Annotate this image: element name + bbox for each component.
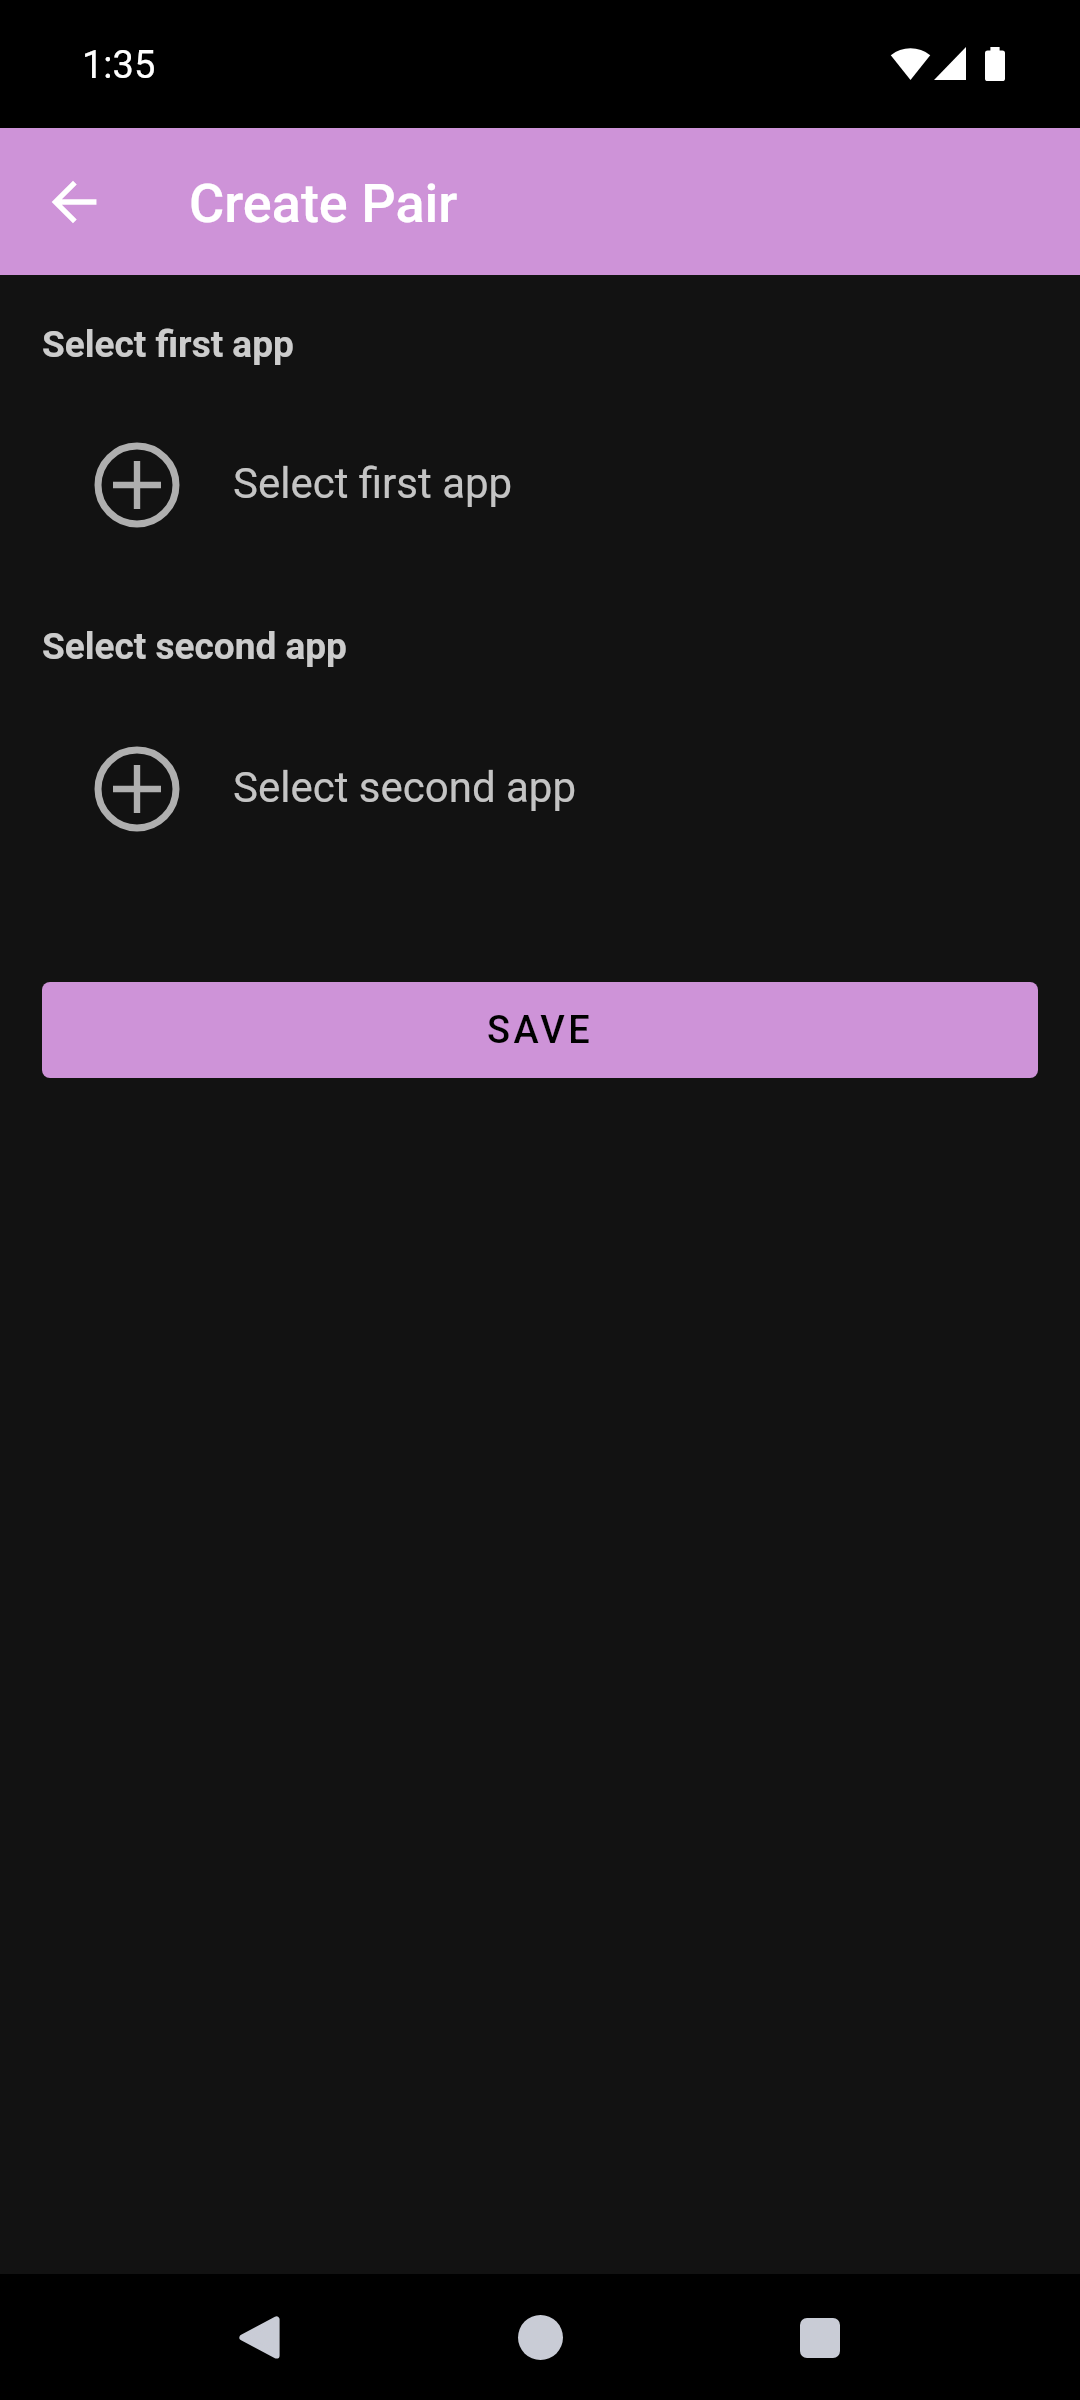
button[interactable]: SAVE bbox=[42, 982, 1038, 1078]
staticText: Select second app bbox=[42, 625, 347, 668]
staticText: Select second app bbox=[233, 763, 577, 812]
staticText: Select first app bbox=[233, 459, 513, 508]
staticText: SAVE bbox=[487, 1008, 593, 1053]
staticText: 1:35 bbox=[82, 43, 156, 88]
button[interactable]: Select second app bbox=[0, 727, 1080, 847]
button[interactable]: Back bbox=[203, 2282, 313, 2392]
button[interactable]: Navigate up bbox=[28, 157, 118, 247]
staticText: Create Pair bbox=[189, 172, 458, 235]
staticText: Select first app bbox=[42, 323, 294, 366]
button[interactable]: Home bbox=[485, 2282, 595, 2392]
button[interactable]: Recent apps bbox=[765, 2283, 875, 2393]
button[interactable]: Select first app bbox=[0, 423, 1080, 543]
